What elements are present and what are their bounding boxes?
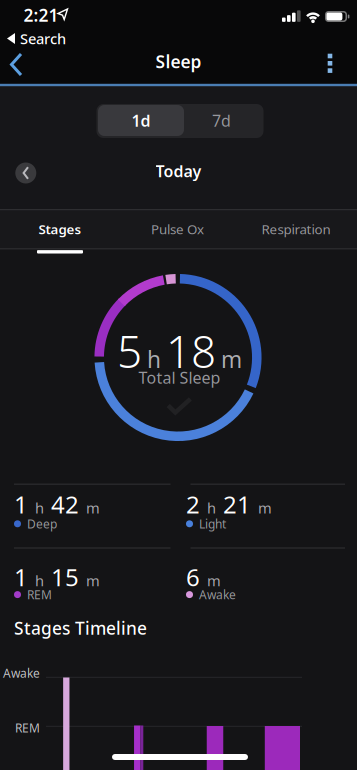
button[interactable]: Pulse Ox — [118, 209, 237, 248]
staticText: REM — [15, 720, 40, 736]
staticText: 5 — [117, 322, 142, 380]
staticText: 7d — [212, 110, 231, 131]
staticText: 2 — [186, 488, 200, 520]
staticText: h — [35, 498, 44, 518]
staticText: m — [86, 571, 100, 590]
staticText: h — [207, 498, 216, 518]
staticText: Deep — [27, 516, 57, 532]
staticText: Respiration — [261, 220, 330, 238]
staticText: m — [221, 344, 242, 374]
staticText: m — [86, 498, 100, 518]
button[interactable]: 7d — [179, 103, 264, 137]
button[interactable]: Back — [0, 43, 44, 85]
staticText: 1 — [14, 488, 28, 520]
staticText: Stages — [38, 220, 81, 238]
staticText: Today — [155, 160, 201, 182]
staticText: Awake — [199, 587, 236, 602]
staticText: 1 — [14, 561, 28, 593]
staticText: Stages Timeline — [14, 616, 147, 639]
button[interactable]: Respiration — [236, 209, 355, 248]
button[interactable]: Back to Search — [0, 29, 74, 47]
staticText: 15 — [51, 561, 79, 593]
staticText: Light — [199, 516, 226, 532]
staticText: Search — [20, 29, 66, 48]
staticText: 18 — [166, 322, 216, 380]
staticText: h — [35, 571, 44, 590]
staticText: Total Sleep — [138, 367, 220, 388]
staticText: 42 — [51, 488, 79, 520]
staticText: Sleep — [155, 50, 201, 73]
staticText: m — [258, 498, 272, 518]
button[interactable]: 1d — [98, 105, 184, 136]
button[interactable]: Stages — [0, 209, 119, 248]
staticText: 2:21 — [23, 3, 58, 26]
staticText: Awake — [3, 665, 40, 681]
button[interactable]: Previous day — [9, 156, 43, 190]
staticText: 21 — [223, 488, 251, 520]
staticText: REM — [27, 587, 52, 602]
staticText: m — [207, 571, 221, 590]
staticText: h — [147, 344, 161, 374]
button[interactable]: More options — [308, 48, 352, 78]
staticText: Pulse Ox — [151, 220, 204, 238]
staticText: 6 — [186, 561, 200, 593]
staticText: 1d — [131, 110, 150, 131]
